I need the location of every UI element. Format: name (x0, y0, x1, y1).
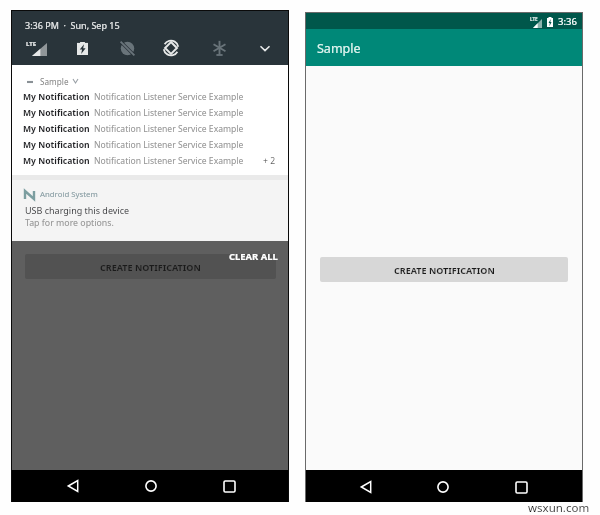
staticText: My Notification (23, 107, 90, 119)
staticText: My Notification (23, 123, 90, 135)
button[interactable]: Android System (12, 180, 288, 241)
staticText: + 2 (263, 155, 276, 167)
button[interactable]: Back (56, 471, 90, 501)
staticText: Notification Listener Service Example (94, 139, 244, 151)
button[interactable]: Battery (68, 34, 96, 62)
button[interactable]: Back (349, 472, 383, 502)
button[interactable]: Auto rotate (157, 34, 185, 62)
staticText: My Notification (23, 155, 90, 167)
staticText: LTE (530, 16, 538, 22)
button[interactable]: Home (426, 472, 460, 502)
staticText: My Notification (23, 91, 90, 103)
button[interactable]: CREATE NOTIFICATION (25, 254, 276, 279)
staticText: CLEAR ALL (229, 250, 278, 263)
button[interactable]: Home (134, 471, 168, 501)
button[interactable]: Flashlight (205, 34, 233, 62)
staticText: 3:36 (558, 15, 577, 28)
button[interactable]: CLEAR ALL (225, 247, 282, 265)
staticText: 3:36 PM · Sun, Sep 15 (25, 19, 120, 31)
button[interactable]: Recent apps (212, 471, 246, 501)
staticText: Sample (317, 40, 361, 57)
staticText: LTE (26, 40, 37, 48)
button[interactable]: Mobile data (22, 34, 50, 62)
staticText: Android System (40, 189, 98, 200)
staticText: Sample (40, 76, 69, 87)
staticText: wsxun.com (528, 500, 590, 515)
staticText: USB charging this device (25, 204, 130, 216)
button[interactable]: Sample (27, 75, 78, 87)
staticText: Notification Listener Service Example (94, 123, 244, 135)
staticText: Notification Listener Service Example (94, 155, 244, 167)
staticText: Notification Listener Service Example (94, 107, 244, 119)
staticText: My Notification (23, 139, 90, 151)
staticText: CREATE NOTIFICATION (100, 261, 201, 273)
staticText: Tap for more options. (25, 217, 114, 229)
button[interactable]: CREATE NOTIFICATION (320, 257, 568, 282)
button[interactable]: Expand quick settings (251, 34, 279, 62)
button[interactable]: Do not disturb (113, 34, 141, 62)
staticText: CREATE NOTIFICATION (394, 264, 495, 276)
staticText: Notification Listener Service Example (94, 91, 244, 103)
button[interactable]: Recent apps (504, 472, 538, 502)
